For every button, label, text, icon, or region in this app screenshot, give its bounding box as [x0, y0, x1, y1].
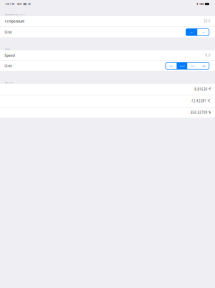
staticText: Unit: [4, 30, 11, 34]
staticText: ft/s: [191, 64, 195, 67]
staticText: °F: [202, 30, 204, 34]
staticText: Speed: [4, 53, 14, 58]
staticText: 100%: [199, 2, 204, 6]
staticText: SPEED: [4, 47, 10, 50]
staticText: 20.0: [203, 19, 210, 23]
button[interactable]: m/s: [166, 62, 177, 69]
button[interactable]: Unit: [0, 27, 215, 37]
staticText: mph: [202, 64, 206, 67]
button[interactable]: mph: [198, 62, 209, 69]
button[interactable]: -12.82281 °C: [0, 95, 215, 107]
staticText: m/s: [169, 64, 173, 67]
staticText: 8.0: [205, 53, 210, 57]
button[interactable]: °F: [197, 29, 209, 36]
staticText: °C: [190, 30, 193, 34]
button[interactable]: °C: [186, 29, 197, 36]
button[interactable]: Temperature: [0, 16, 215, 26]
staticText: RESULTS: [4, 81, 12, 84]
button[interactable]: ft/s: [187, 62, 198, 69]
button[interactable]: 350.32709 %: [0, 108, 215, 118]
button[interactable]: Speed: [0, 50, 215, 60]
button[interactable]: 8.81630 °F: [0, 84, 215, 95]
staticText: TEMPERATURE UNIT: [4, 13, 24, 16]
button[interactable]: km/h: [177, 62, 187, 69]
staticText: -12.82281 °C: [190, 99, 210, 103]
button[interactable]: Unit: [0, 61, 215, 71]
staticText: 8.81630 °F: [194, 87, 210, 91]
staticText: 350.32709 %: [190, 111, 210, 114]
staticText: km/h: [179, 64, 184, 67]
staticText: 1:01 PM Sun Sep 30: [5, 2, 30, 6]
staticText: Temperature: [4, 19, 24, 24]
staticText: Unit: [4, 63, 11, 68]
